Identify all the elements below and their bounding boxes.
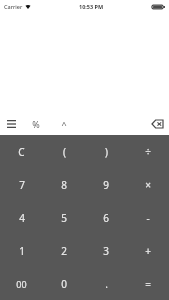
- button[interactable]: ×: [127, 168, 169, 201]
- button[interactable]: 3: [85, 234, 127, 267]
- staticText: 3: [103, 244, 109, 258]
- staticText: C: [18, 145, 25, 159]
- button[interactable]: 0: [43, 267, 85, 300]
- staticText: %: [32, 118, 40, 130]
- button[interactable]: (: [43, 135, 85, 168]
- button[interactable]: 7: [0, 168, 43, 201]
- staticText: 5: [61, 211, 67, 225]
- staticText: =: [145, 277, 151, 291]
- staticText: ): [105, 145, 108, 159]
- button[interactable]: 5: [43, 201, 85, 234]
- staticText: 8: [61, 178, 67, 192]
- button[interactable]: ): [85, 135, 127, 168]
- button[interactable]: 6: [85, 201, 127, 234]
- button[interactable]: 4: [0, 201, 43, 234]
- button[interactable]: =: [127, 267, 169, 300]
- staticText: (: [63, 145, 66, 159]
- staticText: +: [145, 244, 151, 258]
- button[interactable]: -: [127, 201, 169, 234]
- button[interactable]: C: [0, 135, 43, 168]
- button[interactable]: Backspace: [145, 112, 169, 135]
- button[interactable]: .: [85, 267, 127, 300]
- staticText: 00: [16, 278, 27, 290]
- button[interactable]: 1: [0, 234, 43, 267]
- staticText: -: [146, 211, 150, 225]
- button[interactable]: ÷: [127, 135, 169, 168]
- staticText: ÷: [145, 145, 151, 159]
- button[interactable]: 9: [85, 168, 127, 201]
- button[interactable]: Menu: [0, 112, 22, 135]
- staticText: 0: [61, 277, 67, 291]
- staticText: 7: [19, 178, 25, 192]
- staticText: 10:53 PM: [79, 3, 104, 10]
- staticText: 1: [19, 244, 25, 258]
- staticText: Carrier: [4, 3, 23, 10]
- staticText: 9: [103, 178, 109, 192]
- staticText: ^: [61, 118, 67, 130]
- button[interactable]: +: [127, 234, 169, 267]
- staticText: 2: [61, 244, 67, 258]
- button[interactable]: 00: [0, 267, 43, 300]
- button[interactable]: ^: [50, 112, 78, 135]
- button[interactable]: 8: [43, 168, 85, 201]
- button[interactable]: %: [22, 112, 50, 135]
- staticText: .: [105, 277, 108, 291]
- staticText: 6: [103, 211, 109, 225]
- button[interactable]: 2: [43, 234, 85, 267]
- staticText: 4: [19, 211, 25, 225]
- staticText: ×: [145, 178, 151, 192]
